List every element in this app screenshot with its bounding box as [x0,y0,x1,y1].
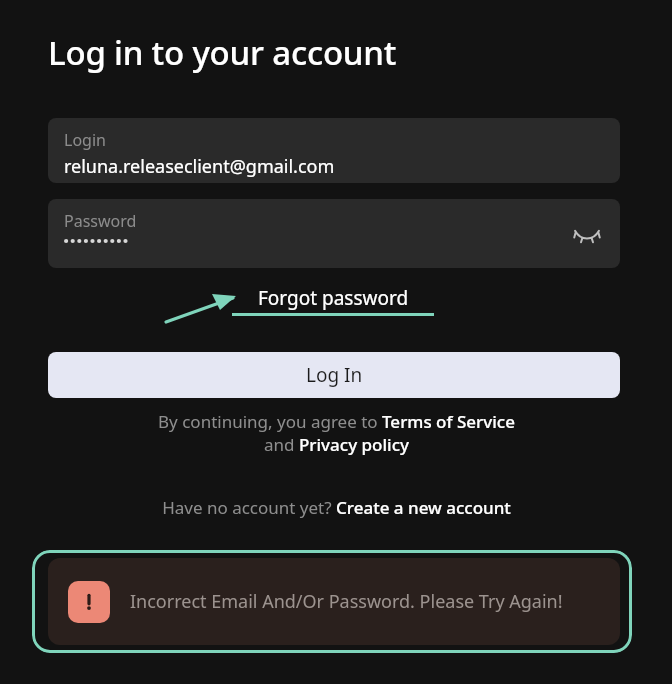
button[interactable]: Incorrect Email And/Or Password. Please … [48,558,620,645]
button[interactable]: Password [48,199,620,268]
staticText: reluna.releaseclient@gmail.com [64,154,335,179]
staticText: By continuing, you agree to Terms of Ser… [158,410,515,456]
staticText: Log in to your account [48,30,397,75]
staticText: Login [64,129,106,151]
staticText: Forgot password [258,285,409,311]
button[interactable]: Log In [48,352,620,398]
button[interactable]: Have no account yet? Create a new accoun… [0,496,672,522]
staticText: Log In [306,362,363,388]
button[interactable]: Forgot password [232,285,434,317]
staticText: Have no account yet? Create a new accoun… [162,496,511,519]
button[interactable]: Show password [570,217,604,251]
staticText: Password [64,210,137,232]
button[interactable]: By continuing, you agree to Terms of Ser… [0,410,672,456]
button[interactable]: Login [48,118,620,183]
staticText: Incorrect Email And/Or Password. Please … [130,589,563,614]
